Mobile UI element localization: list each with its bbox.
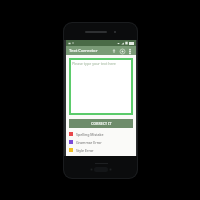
button[interactable]: CORRECT IT [69, 119, 133, 128]
other: Back [90, 168, 93, 171]
button[interactable]: Style Error [69, 147, 133, 153]
staticText: CORRECT IT [91, 121, 112, 126]
staticText: Grammar Error [76, 140, 102, 145]
button[interactable]: Highlight [110, 47, 118, 55]
staticText: Style Error [76, 148, 94, 153]
button[interactable]: More options [126, 47, 134, 55]
staticText: Please type your text here [72, 61, 116, 66]
button[interactable]: Read aloud [118, 47, 126, 55]
staticText: Spelling Mistake [76, 132, 104, 137]
button[interactable]: Please type your text here [69, 58, 133, 115]
other: Recents [109, 168, 112, 171]
staticText: Text Corrector [69, 48, 98, 54]
button[interactable]: Grammar Error [69, 139, 133, 145]
button[interactable]: Spelling Mistake [69, 131, 133, 137]
